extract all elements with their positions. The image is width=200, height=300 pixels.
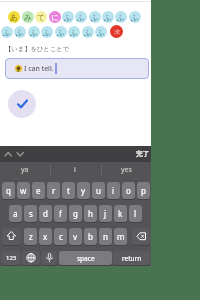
button[interactable]: m (114, 228, 127, 245)
button[interactable]: v (69, 228, 82, 245)
button[interactable]: ya (0, 162, 50, 178)
staticText: あ (10, 13, 18, 22)
staticText: e (36, 185, 41, 196)
staticText: c (59, 231, 63, 242)
staticText: ふ (91, 13, 99, 22)
button[interactable]: ふ (62, 11, 74, 23)
staticText: p (141, 185, 146, 196)
button[interactable]: j (99, 205, 112, 222)
staticText: t (67, 185, 70, 196)
button[interactable]: 完了 (132, 150, 151, 158)
button[interactable]: n (99, 228, 112, 245)
staticText: yes (121, 165, 132, 175)
staticText: s (29, 208, 33, 219)
button[interactable]: i (50, 162, 100, 178)
button[interactable]: t (62, 182, 75, 199)
button[interactable]: c (54, 228, 67, 245)
button[interactable]: y (77, 182, 90, 199)
button[interactable]: e (32, 182, 45, 199)
staticText: ふ (97, 28, 105, 37)
button[interactable] (22, 251, 40, 265)
staticText: n (103, 231, 108, 242)
button[interactable]: あ (8, 11, 20, 23)
button[interactable]: x (39, 228, 52, 245)
staticText: j (104, 208, 107, 219)
button[interactable]: r (47, 182, 60, 199)
staticText: b (88, 231, 93, 242)
staticText: k (118, 208, 123, 219)
button[interactable]: ふ (41, 26, 53, 38)
staticText: ふ (3, 28, 11, 37)
button[interactable] (132, 228, 150, 245)
staticText: 123 (6, 254, 17, 262)
staticText: d (43, 208, 48, 219)
button[interactable] (2, 228, 21, 245)
button[interactable]: z (24, 228, 37, 245)
staticText: み (24, 13, 32, 22)
staticText: u (96, 185, 101, 196)
staticText: h (88, 208, 93, 219)
button[interactable]: ふ (14, 26, 26, 38)
button[interactable]: ふ (102, 11, 114, 23)
staticText: に (51, 13, 59, 22)
staticText: ふ (57, 28, 65, 37)
staticText: I can tell. (24, 64, 54, 74)
button[interactable]: 末 (110, 25, 123, 38)
button[interactable]: w (17, 182, 30, 199)
staticText: g (73, 208, 78, 219)
button[interactable]: return (113, 251, 150, 265)
button[interactable]: ふ (95, 26, 107, 38)
button[interactable]: i (107, 182, 120, 199)
button[interactable]: ふ (55, 26, 67, 38)
button[interactable]: み (22, 11, 34, 23)
staticText: i (74, 165, 76, 175)
button[interactable] (42, 251, 57, 265)
staticText: ふ (104, 13, 112, 22)
staticText: ふ (16, 28, 24, 37)
button[interactable]: て (35, 11, 47, 23)
staticText: x (43, 231, 48, 242)
button[interactable]: g (69, 205, 82, 222)
button[interactable] (0, 146, 28, 162)
button[interactable]: ふ (68, 26, 80, 38)
button[interactable]: o (122, 182, 135, 199)
staticText: return (122, 254, 142, 263)
staticText: o (126, 185, 131, 196)
button[interactable] (8, 90, 36, 118)
staticText: r (52, 185, 56, 196)
staticText: ふ (43, 28, 51, 37)
staticText: ふ (70, 28, 78, 37)
button[interactable]: k (114, 205, 127, 222)
staticText: v (73, 231, 78, 242)
button[interactable]: u (92, 182, 105, 199)
button[interactable]: d (39, 205, 52, 222)
button[interactable]: ふ (28, 26, 40, 38)
button[interactable]: ふ (89, 11, 101, 23)
button[interactable]: b (84, 228, 97, 245)
staticText: space (77, 254, 95, 263)
button[interactable]: に (49, 11, 61, 23)
button[interactable]: ふ (1, 26, 13, 38)
button[interactable]: a (9, 205, 22, 222)
staticText: て (37, 13, 45, 22)
staticText: ya (21, 165, 29, 175)
button[interactable]: space (59, 251, 112, 265)
button[interactable]: ふ (129, 11, 141, 23)
button[interactable]: I can tell. (5, 58, 149, 79)
staticText: m (117, 231, 125, 242)
button[interactable]: l (129, 205, 142, 222)
button[interactable]: s (24, 205, 37, 222)
staticText: 末 (114, 28, 120, 36)
staticText: ふ (64, 13, 72, 22)
button[interactable]: yes (101, 162, 151, 178)
button[interactable]: ふ (82, 26, 94, 38)
button[interactable]: p (137, 182, 150, 199)
button[interactable]: ふ (115, 11, 127, 23)
button[interactable]: 123 (2, 251, 20, 265)
button[interactable]: q (2, 182, 15, 199)
button[interactable]: ふ (75, 11, 87, 23)
button[interactable]: h (84, 205, 97, 222)
staticText: i (112, 185, 115, 196)
button[interactable]: f (54, 205, 67, 222)
staticText: ふ (131, 13, 139, 22)
